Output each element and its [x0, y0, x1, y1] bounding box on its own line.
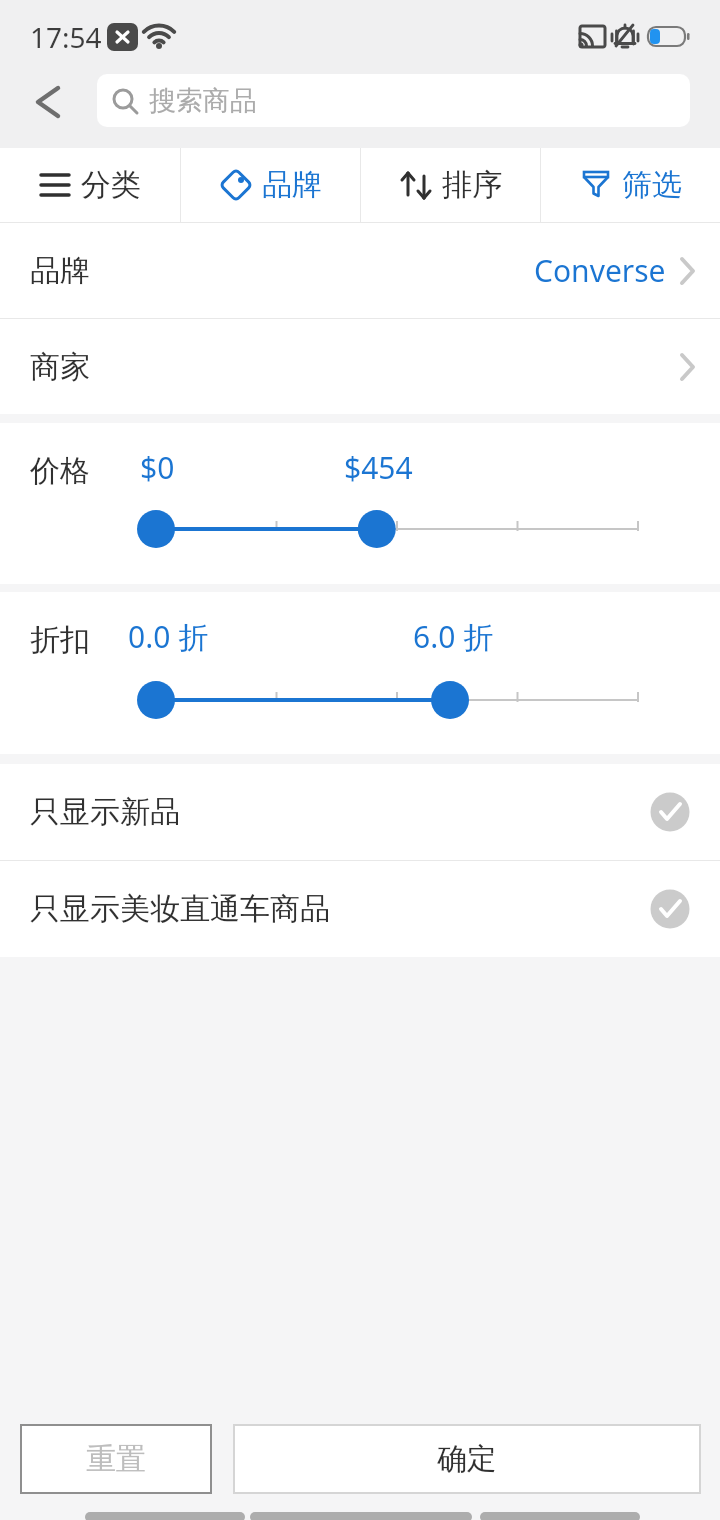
button[interactable]: 只显示新品 — [0, 764, 720, 860]
staticText: 6.0 折 — [413, 616, 494, 657]
button[interactable]: 只显示美妆直通车商品 — [0, 861, 720, 957]
staticText: 只显示新品 — [30, 793, 180, 831]
staticText: 排序 — [442, 166, 502, 204]
staticText: 折扣 — [30, 621, 90, 659]
staticText: 品牌 — [262, 166, 322, 204]
staticText: 品牌 — [30, 252, 90, 290]
staticText: 确定 — [437, 1440, 497, 1478]
staticText: 0.0 折 — [128, 616, 209, 657]
button[interactable]: 重置 — [20, 1424, 212, 1494]
button[interactable]: 品牌 — [0, 223, 720, 318]
button[interactable]: 排序 — [361, 148, 540, 222]
staticText: 搜索商品 — [149, 84, 257, 118]
staticText: 分类 — [81, 166, 141, 204]
staticText: 价格 — [30, 452, 90, 490]
button[interactable]: 品牌 — [181, 148, 360, 222]
button[interactable]: 商家 — [0, 319, 720, 414]
button[interactable]: 搜索商品 — [97, 74, 690, 127]
button[interactable]: 确定 — [233, 1424, 701, 1494]
button[interactable]: 分类 — [0, 148, 180, 222]
staticText: 17:54 — [30, 18, 102, 56]
staticText: Converse — [534, 250, 666, 291]
staticText: $454 — [344, 447, 413, 488]
staticText: $0 — [140, 447, 175, 488]
staticText: 只显示美妆直通车商品 — [30, 890, 330, 928]
staticText: 筛选 — [622, 166, 682, 204]
button[interactable]: 筛选 — [541, 148, 720, 222]
staticText: 重置 — [86, 1440, 146, 1478]
staticText: 商家 — [30, 348, 90, 386]
